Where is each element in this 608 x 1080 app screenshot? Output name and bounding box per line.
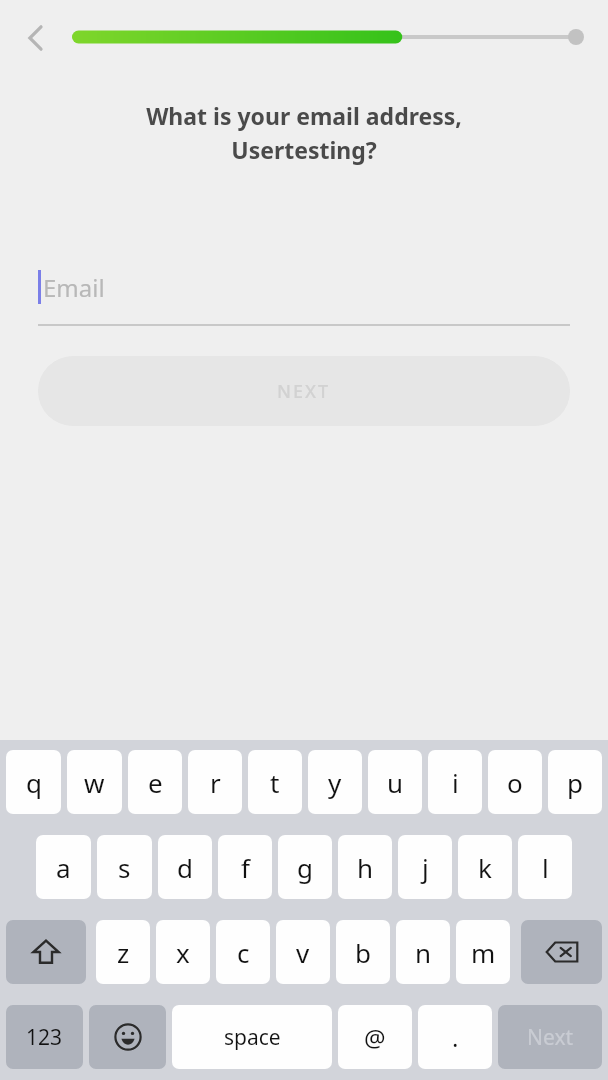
button[interactable]: f — [218, 835, 272, 899]
button[interactable]: Backspace — [521, 920, 602, 984]
button[interactable]: Next — [498, 1005, 602, 1069]
staticText: space — [224, 1023, 281, 1052]
staticText: o — [507, 765, 523, 800]
button[interactable]: m — [456, 920, 510, 984]
staticText: y — [328, 765, 342, 800]
button[interactable]: . — [418, 1005, 492, 1069]
button[interactable]: e — [128, 750, 182, 814]
button[interactable]: Shift — [6, 920, 86, 984]
button[interactable]: q — [6, 750, 61, 814]
button[interactable]: a — [36, 835, 91, 899]
button[interactable]: Back — [8, 10, 64, 66]
staticText: t — [270, 765, 280, 800]
button[interactable]: x — [156, 920, 210, 984]
button[interactable]: z — [96, 920, 150, 984]
staticText: r — [210, 765, 221, 800]
staticText: Next — [527, 1023, 574, 1052]
button[interactable]: r — [188, 750, 242, 814]
staticText: c — [237, 935, 250, 970]
button[interactable]: u — [368, 750, 422, 814]
button[interactable]: d — [158, 835, 212, 899]
staticText: j — [422, 850, 429, 885]
staticText: What is your email address, Usertesting? — [40, 100, 568, 166]
staticText: 123 — [26, 1023, 63, 1052]
staticText: m — [471, 935, 496, 970]
button[interactable]: l — [518, 835, 572, 899]
button[interactable]: i — [428, 750, 482, 814]
staticText: v — [296, 935, 310, 970]
staticText: z — [117, 935, 130, 970]
button[interactable]: c — [216, 920, 270, 984]
staticText: i — [452, 765, 459, 800]
staticText: e — [148, 765, 163, 800]
staticText: g — [297, 850, 313, 885]
staticText: . — [452, 1021, 459, 1054]
button[interactable]: o — [488, 750, 542, 814]
button[interactable]: y — [308, 750, 362, 814]
button[interactable]: space — [172, 1005, 332, 1069]
staticText: l — [542, 850, 549, 885]
button[interactable]: w — [67, 750, 122, 814]
button[interactable]: @ — [338, 1005, 412, 1069]
staticText: u — [387, 765, 404, 800]
button[interactable]: Emoji — [89, 1005, 166, 1069]
button[interactable]: h — [338, 835, 392, 899]
button[interactable]: n — [396, 920, 450, 984]
staticText: s — [118, 850, 131, 885]
staticText: h — [357, 850, 374, 885]
button[interactable]: Email — [38, 248, 570, 326]
staticText: q — [26, 765, 42, 800]
button[interactable]: g — [278, 835, 332, 899]
button[interactable]: j — [398, 835, 452, 899]
staticText: n — [415, 935, 432, 970]
button[interactable]: s — [97, 835, 152, 899]
button[interactable]: v — [276, 920, 330, 984]
button[interactable]: 123 — [6, 1005, 83, 1069]
staticText: k — [478, 850, 492, 885]
staticText: w — [84, 765, 105, 800]
button[interactable]: b — [336, 920, 390, 984]
staticText: @ — [364, 1021, 386, 1054]
staticText: d — [177, 850, 193, 885]
staticText: b — [355, 935, 371, 970]
staticText: p — [567, 765, 583, 800]
staticText: x — [176, 935, 190, 970]
button[interactable]: t — [248, 750, 302, 814]
button[interactable]: k — [458, 835, 512, 899]
staticText: NEXT — [277, 379, 331, 404]
staticText: Email — [43, 271, 105, 304]
staticText: a — [56, 850, 71, 885]
staticText: f — [241, 850, 250, 885]
button[interactable]: p — [548, 750, 602, 814]
